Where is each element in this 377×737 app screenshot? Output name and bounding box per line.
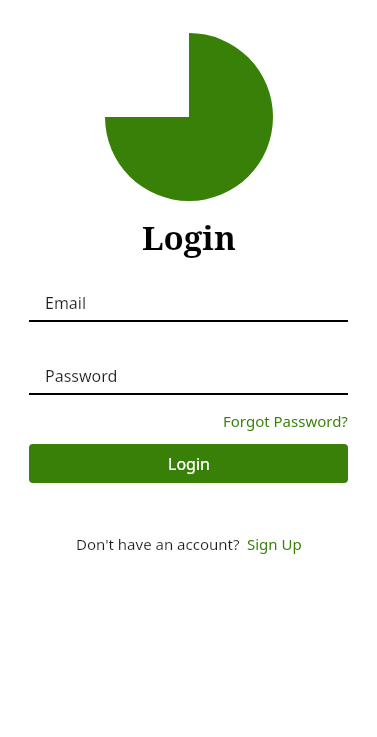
staticText: Email [45,292,87,314]
staticText: Sign Up [247,534,302,554]
staticText: Password [45,365,118,387]
button[interactable]: Email [29,286,348,320]
staticText: Login [168,453,210,475]
button[interactable]: Login [29,444,348,483]
staticText: Don't have an account? [76,534,240,554]
staticText: Forgot Password? [223,411,348,431]
button[interactable]: Password [29,359,348,393]
button[interactable]: Forgot Password? [223,411,348,431]
button[interactable]: Sign Up [247,534,302,554]
staticText: Login [142,215,236,260]
